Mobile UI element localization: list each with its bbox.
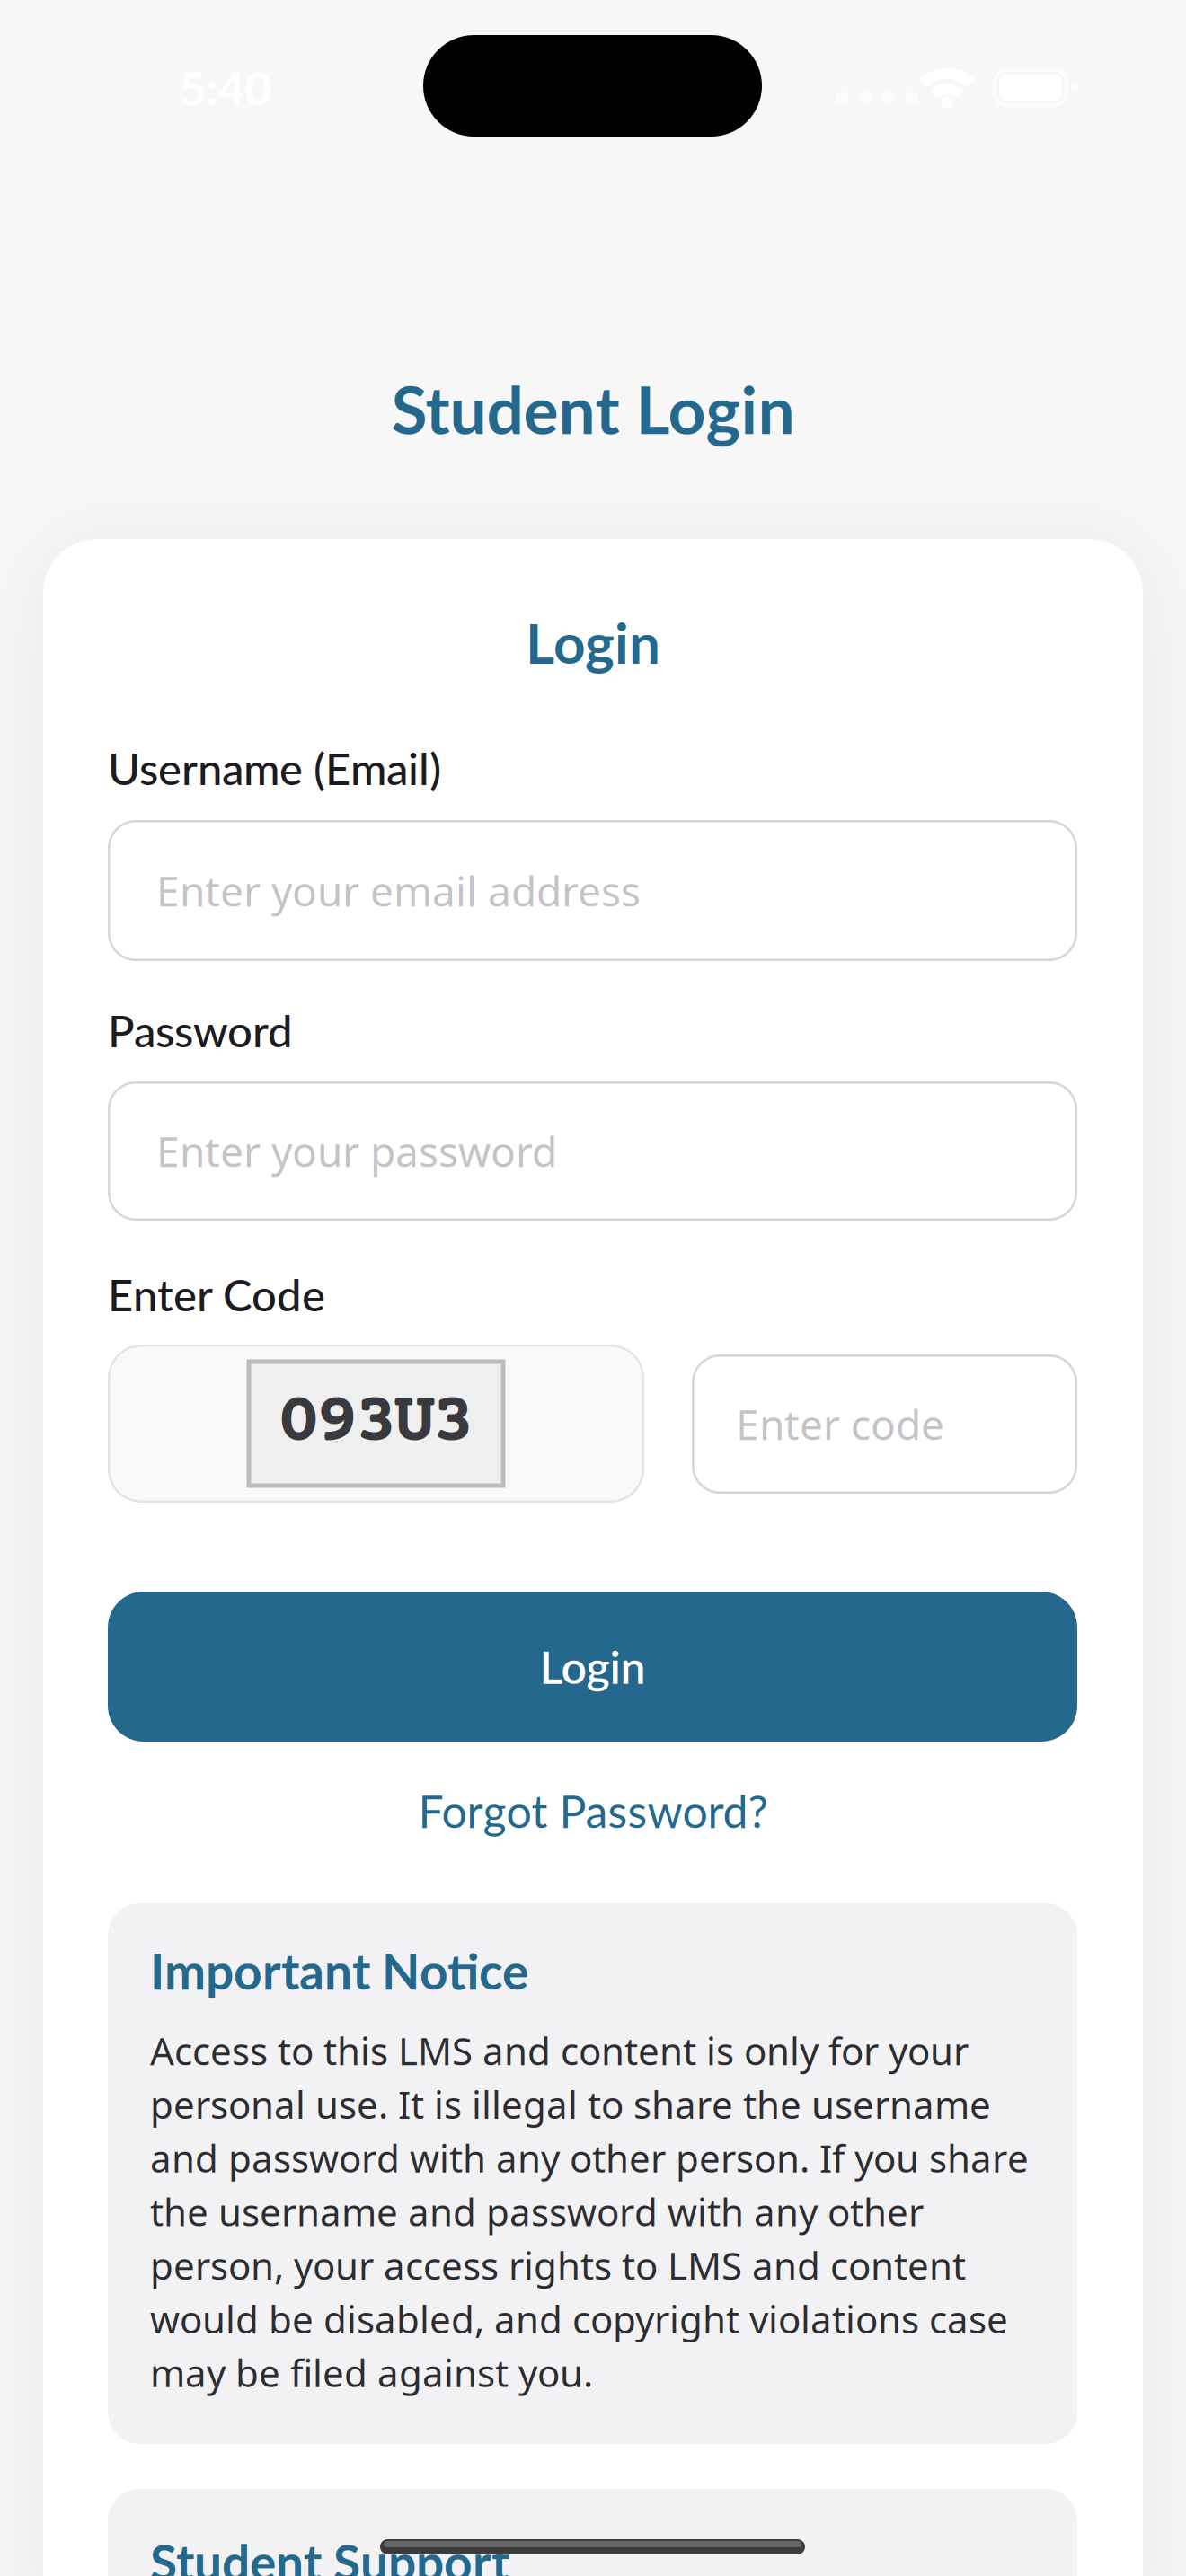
staticText: Enter code <box>736 1397 944 1452</box>
button[interactable]: Login <box>108 1592 1077 1742</box>
staticText: Enter your email address <box>156 863 641 918</box>
staticText: 5:40 <box>179 61 272 116</box>
staticText: Important Notice <box>150 1941 528 2000</box>
staticText: Student Support <box>150 2532 509 2576</box>
staticText: Username (Email) <box>108 742 441 794</box>
staticText: Enter Code <box>108 1268 325 1321</box>
staticText: Forgot Password? <box>418 1784 768 1838</box>
staticText: Login <box>526 609 660 676</box>
staticText: Password <box>108 1004 293 1057</box>
staticText: Login <box>540 1640 646 1694</box>
staticText: Access to this LMS and content is only f… <box>150 2025 1029 2398</box>
button[interactable]: Forgot Password? <box>0 1779 1186 1842</box>
staticText: Student Login <box>391 369 795 448</box>
staticText: 093U3 <box>277 1383 475 1464</box>
staticText: Enter your password <box>156 1124 557 1179</box>
